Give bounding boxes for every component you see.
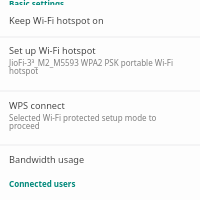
staticText: Connected users [9, 178, 76, 189]
staticText: Basic settings [9, 0, 65, 5]
staticText: Keep Wi-Fi hotspot on [9, 14, 104, 27]
button[interactable]: WPS connect [0, 91, 200, 144]
button[interactable]: Keep Wi-Fi hotspot on [0, 8, 200, 36]
button[interactable]: Set up Wi-Fi hotspot [0, 37, 200, 90]
staticText: Selected Wi-Fi protected setup mode to p… [9, 112, 186, 131]
button[interactable]: Bandwidth usage [0, 145, 200, 176]
staticText: JioFi-3³_M2_M5593 WPA2 PSK portable Wi-F… [9, 57, 186, 76]
staticText: WPS connect [9, 99, 65, 112]
staticText: Bandwidth usage [9, 153, 85, 166]
staticText: Set up Wi-Fi hotspot [9, 44, 96, 57]
